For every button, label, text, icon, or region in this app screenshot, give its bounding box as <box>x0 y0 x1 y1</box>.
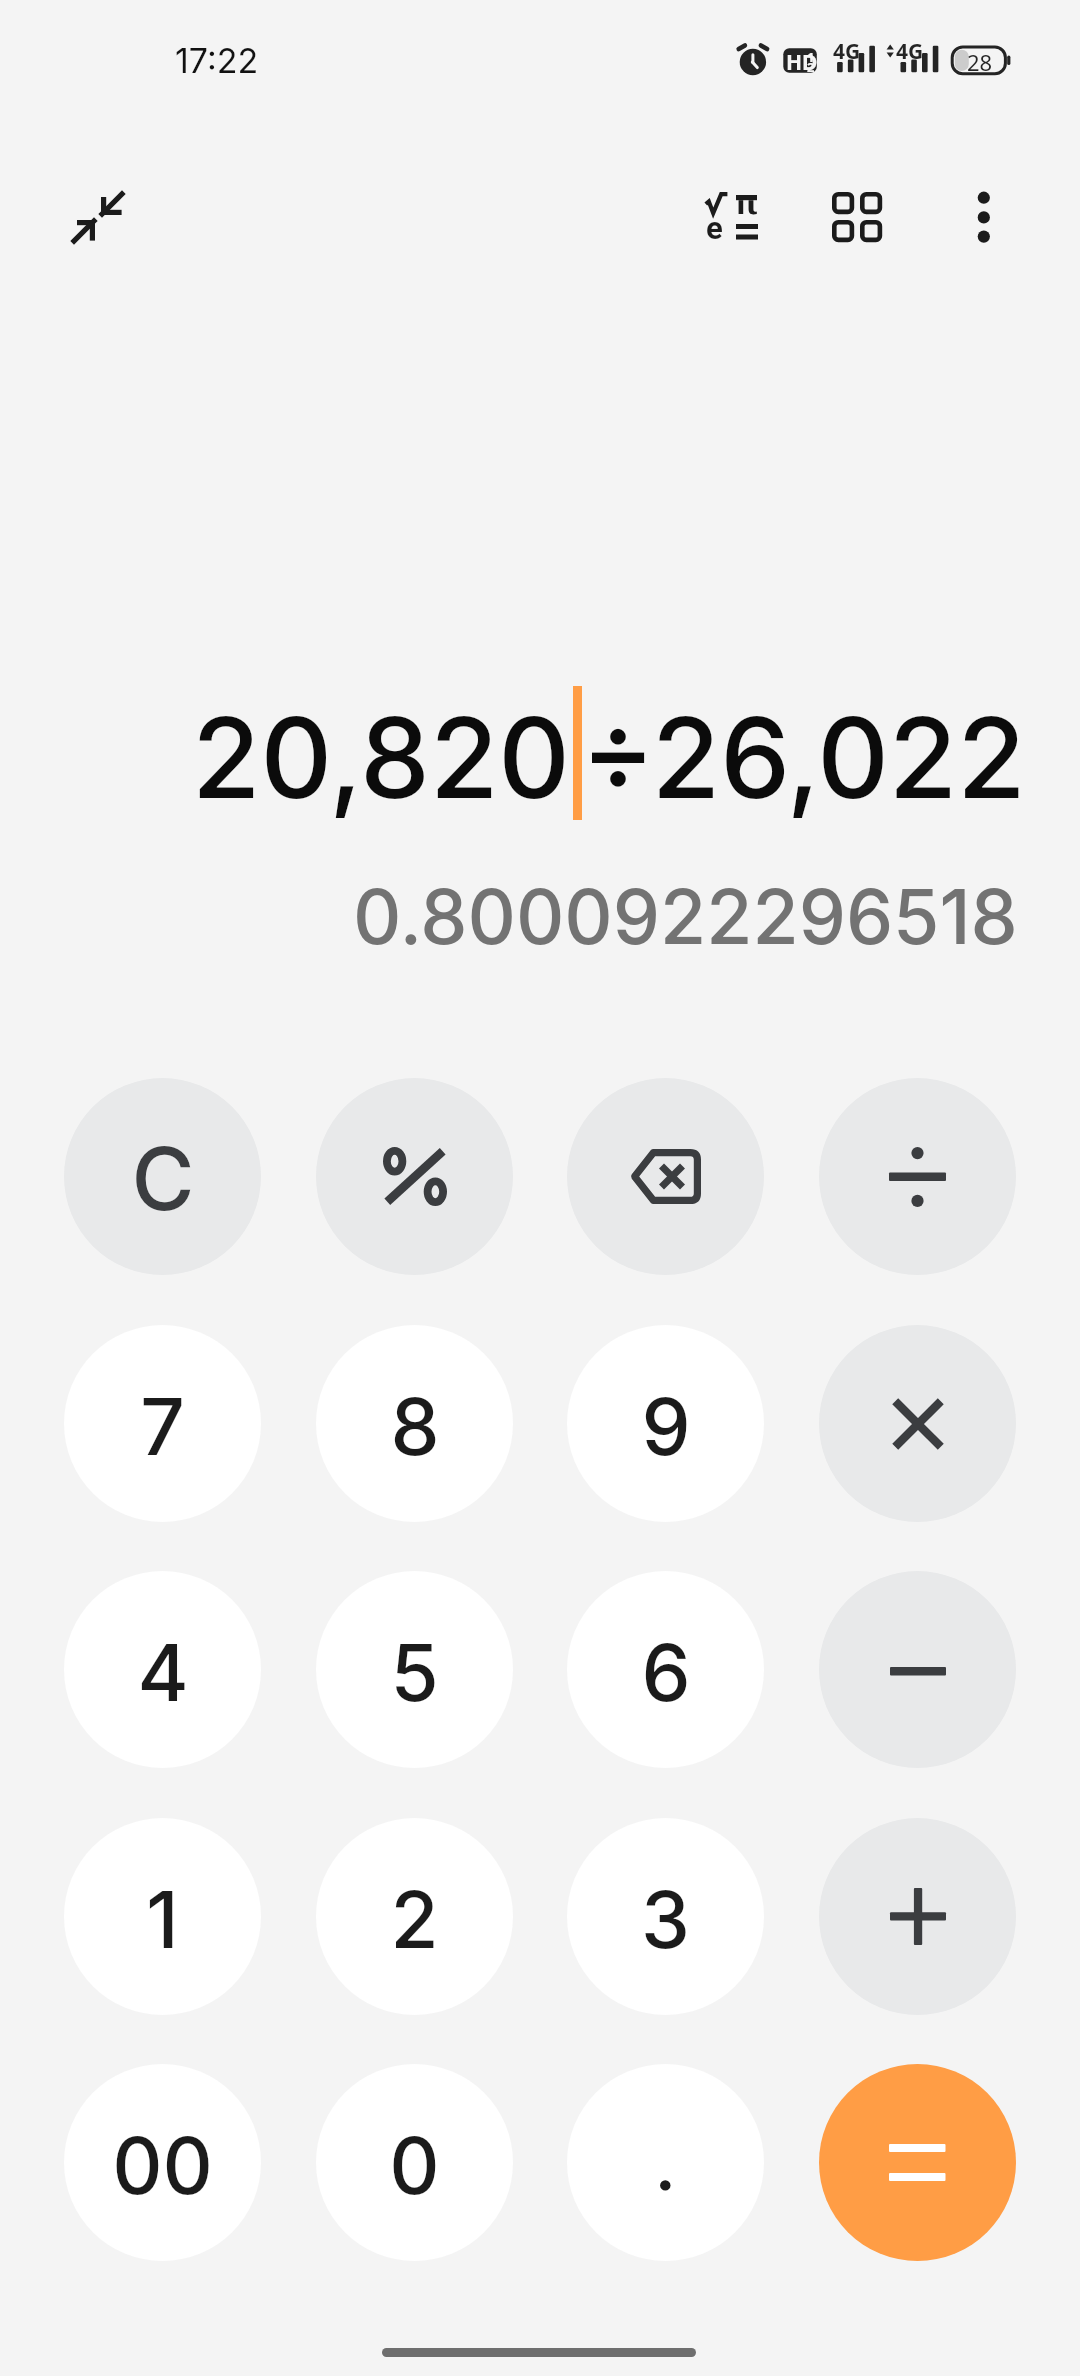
button[interactable]: Collapse <box>50 170 150 270</box>
staticText: 0 <box>389 2118 440 2212</box>
staticText: 17:22 <box>175 40 259 81</box>
staticText: 8 <box>390 1379 440 1473</box>
button[interactable]: 9 <box>567 1325 764 1522</box>
staticText: 1 <box>807 48 815 66</box>
staticText: 6 <box>641 1625 691 1719</box>
button[interactable]: 8 <box>316 1325 513 1522</box>
staticText: C <box>131 1127 195 1231</box>
staticText: 20,820 <box>192 690 570 824</box>
button[interactable]: 1 <box>64 1818 261 2015</box>
button[interactable]: C <box>64 1078 261 1275</box>
button[interactable]: 0 <box>316 2064 513 2261</box>
staticText: e <box>706 210 723 246</box>
button[interactable]: 6 <box>567 1571 764 1768</box>
staticText: 4 <box>137 1625 189 1719</box>
staticText: 2 <box>807 58 815 76</box>
button[interactable]: Multiply <box>819 1325 1016 1522</box>
button[interactable]: 4 <box>64 1571 261 1768</box>
staticText: 28 <box>967 47 993 77</box>
staticText: 4G <box>833 37 861 66</box>
staticText: 00 <box>112 2118 213 2212</box>
button[interactable]: Backspace <box>567 1078 764 1275</box>
button[interactable]: Add <box>819 1818 1016 2015</box>
staticText: HD <box>786 48 818 77</box>
button[interactable]: Divide <box>819 1078 1016 1275</box>
button[interactable]: Equals <box>819 2064 1016 2261</box>
staticText: 0.8000922296518 <box>353 871 1018 962</box>
button[interactable]: 2 <box>316 1818 513 2015</box>
button[interactable]: Convert <box>808 167 908 267</box>
staticText: ÷26,022 <box>581 690 1026 824</box>
staticText: 7 <box>140 1379 185 1473</box>
button[interactable]: 3 <box>567 1818 764 2015</box>
staticText: 1 <box>146 1872 179 1966</box>
button[interactable] <box>567 2064 764 2261</box>
button[interactable]: Percent <box>316 1078 513 1275</box>
button[interactable]: 5 <box>316 1571 513 1768</box>
button[interactable]: More options <box>934 167 1034 267</box>
button[interactable]: 00 <box>64 2064 261 2261</box>
staticText: 3 <box>641 1872 690 1966</box>
button[interactable]: Scientific mode <box>680 167 780 267</box>
staticText: 5 <box>390 1625 439 1719</box>
button[interactable]: 7 <box>64 1325 261 1522</box>
button[interactable]: Subtract <box>819 1571 1016 1768</box>
staticText: 9 <box>641 1379 691 1473</box>
staticText: 4G <box>896 37 924 66</box>
staticText: 2 <box>390 1872 439 1966</box>
